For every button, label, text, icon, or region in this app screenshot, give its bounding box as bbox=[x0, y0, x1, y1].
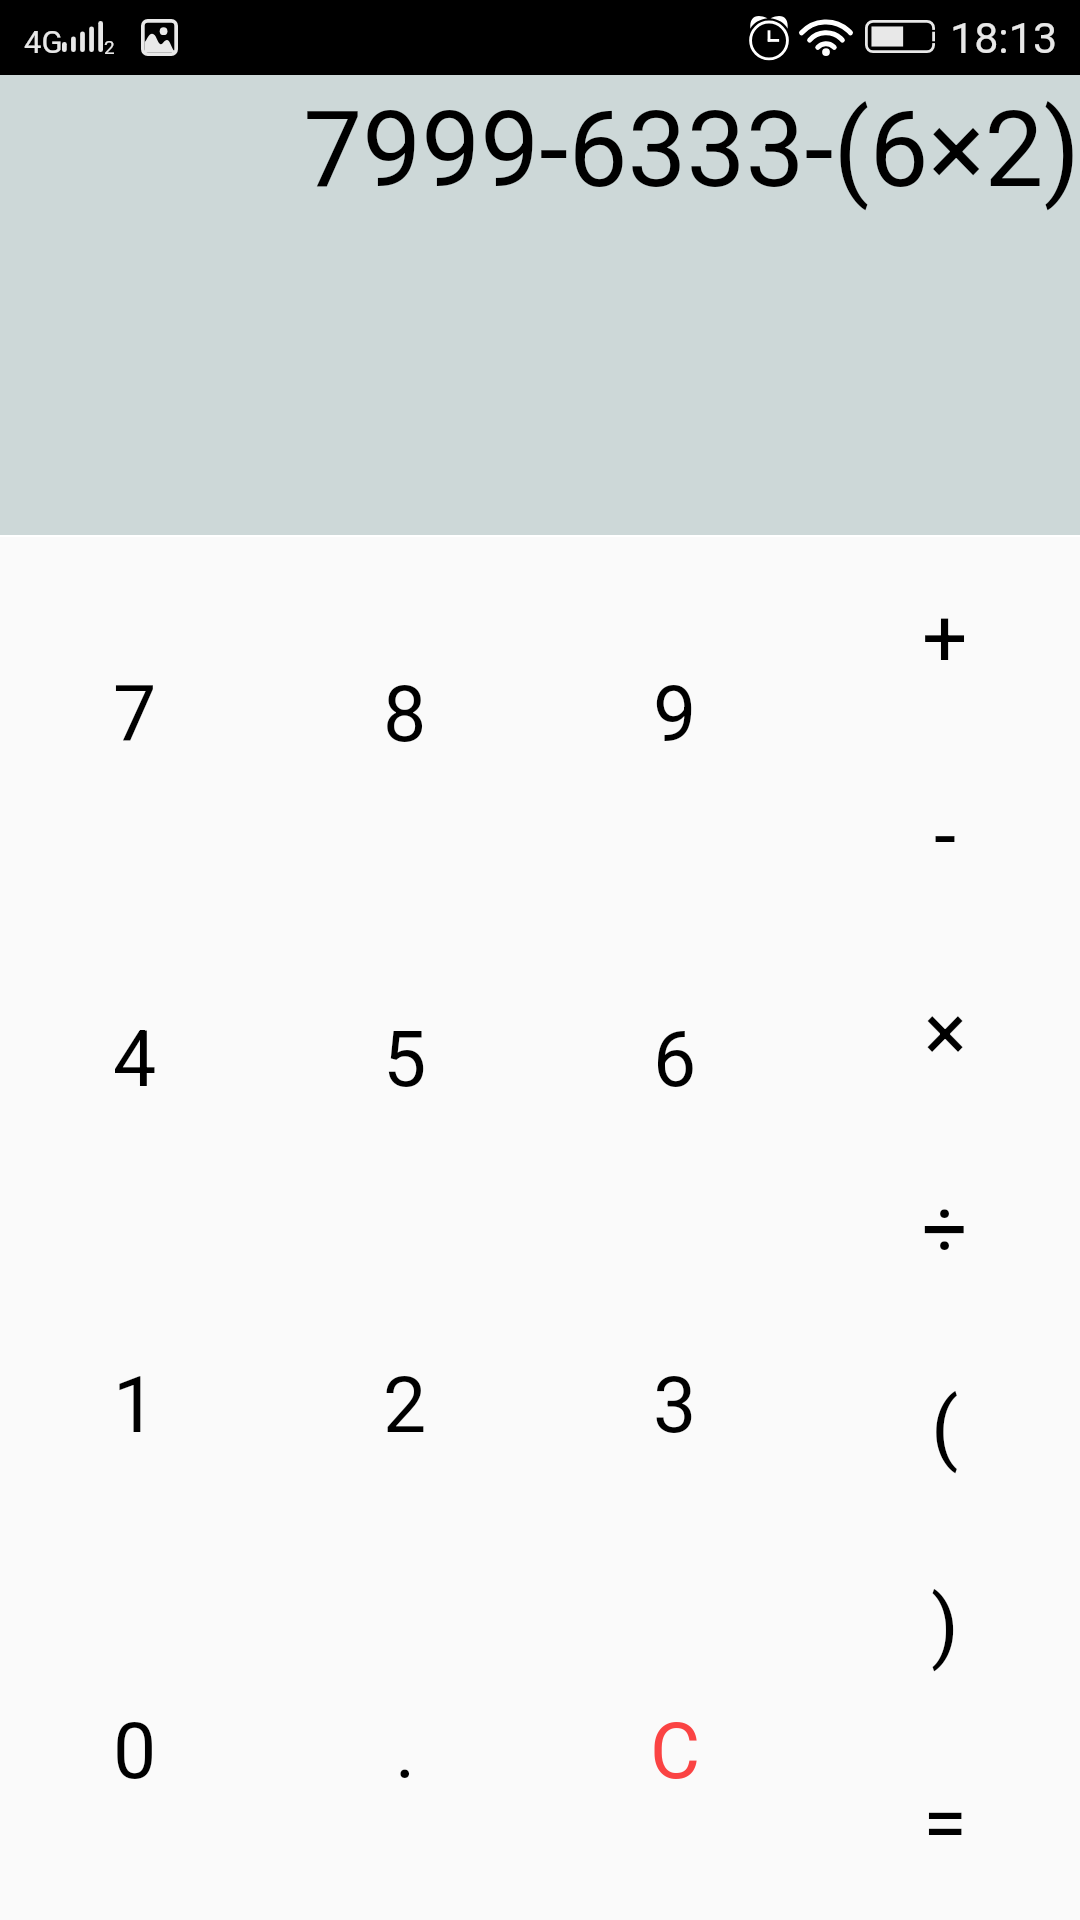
staticText: 9 bbox=[653, 670, 697, 760]
staticText: ) bbox=[931, 1579, 959, 1673]
staticText: = bbox=[923, 1777, 967, 1871]
button[interactable]: Plus bbox=[810, 537, 1080, 734]
staticText: 7 bbox=[113, 670, 157, 760]
button[interactable]: Equals bbox=[810, 1722, 1080, 1920]
button[interactable]: Minus bbox=[810, 734, 1080, 931]
staticText: ( bbox=[931, 1381, 959, 1475]
button[interactable]: 8 bbox=[270, 537, 540, 882]
staticText: 3 bbox=[653, 1361, 697, 1451]
button[interactable]: 2 bbox=[270, 1228, 540, 1574]
staticText: 4 bbox=[113, 1015, 157, 1105]
staticText: 4G bbox=[24, 24, 63, 60]
other: Battery bbox=[865, 20, 935, 53]
button[interactable]: 0 bbox=[0, 1574, 270, 1920]
button[interactable]: 7 bbox=[0, 537, 270, 882]
other: Wi-Fi bbox=[803, 18, 849, 55]
other: Alarm bbox=[750, 15, 788, 60]
staticText: 2 bbox=[383, 1361, 427, 1451]
staticText: 1 bbox=[113, 1361, 157, 1451]
button[interactable]: Divide bbox=[810, 1128, 1080, 1326]
staticText: × bbox=[924, 986, 967, 1080]
staticText: C bbox=[650, 1707, 701, 1797]
button[interactable]: Close bracket bbox=[810, 1524, 1080, 1722]
staticText: 8 bbox=[383, 670, 427, 760]
button[interactable]: 3 bbox=[540, 1228, 810, 1574]
button[interactable]: 5 bbox=[270, 882, 540, 1228]
staticText: ÷ bbox=[922, 1183, 968, 1277]
staticText: 5 bbox=[383, 1015, 427, 1105]
button[interactable]: Decimal point bbox=[270, 1574, 540, 1920]
staticText: - bbox=[934, 789, 957, 883]
button[interactable]: Multiply bbox=[810, 931, 1080, 1128]
staticText: 0 bbox=[113, 1707, 157, 1797]
button[interactable]: 9 bbox=[540, 537, 810, 882]
staticText: 7999-6333-(6×2) bbox=[303, 89, 1080, 212]
staticText: . bbox=[395, 1707, 416, 1797]
staticText: 18:13 bbox=[950, 13, 1058, 63]
button[interactable]: 6 bbox=[540, 882, 810, 1228]
button[interactable]: Clear bbox=[540, 1574, 810, 1920]
staticText: + bbox=[922, 592, 968, 686]
staticText: 2 bbox=[104, 36, 115, 58]
button[interactable]: Open bracket bbox=[810, 1326, 1080, 1524]
other: Screenshot bbox=[141, 19, 178, 56]
button[interactable]: 4 bbox=[0, 882, 270, 1228]
staticText: 6 bbox=[653, 1015, 697, 1105]
button[interactable]: 1 bbox=[0, 1228, 270, 1574]
